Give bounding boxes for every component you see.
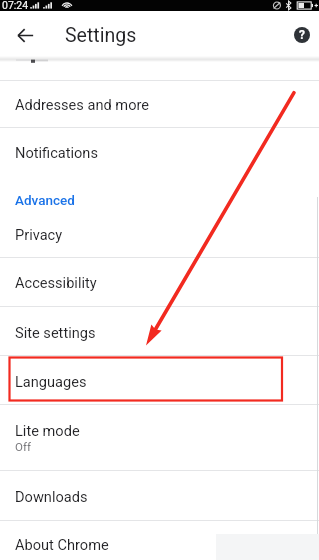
staticText: Languages: [15, 373, 87, 390]
staticText: Privacy: [15, 226, 63, 243]
staticText: Advanced: [15, 192, 75, 208]
staticText: Downloads: [15, 488, 88, 505]
button[interactable]: Navigate up: [9, 19, 41, 51]
staticText: 07:24: [2, 0, 29, 10]
button[interactable]: Accessibility: [0, 258, 319, 306]
staticText: Addresses and more: [15, 96, 150, 113]
staticText: Lite mode: [15, 422, 80, 439]
button[interactable]: Site settings: [0, 307, 319, 355]
button[interactable]: Downloads: [0, 471, 319, 520]
button[interactable]: Lite mode: [0, 405, 319, 470]
button[interactable]: Help and feedback: [287, 20, 317, 50]
button[interactable]: Languages: [0, 356, 319, 404]
staticText: Settings: [65, 24, 137, 47]
button[interactable]: Addresses and more: [0, 81, 319, 127]
staticText: Accessibility: [15, 274, 97, 291]
staticText: Site settings: [15, 324, 96, 341]
staticText: Notifications: [15, 144, 98, 161]
button[interactable]: Privacy: [0, 212, 319, 257]
button[interactable]: Notifications: [0, 128, 319, 175]
staticText: Off: [15, 440, 31, 453]
button[interactable]: About Chrome: [0, 521, 319, 560]
staticText: About Chrome: [15, 536, 109, 553]
staticText: ?: [299, 28, 305, 42]
